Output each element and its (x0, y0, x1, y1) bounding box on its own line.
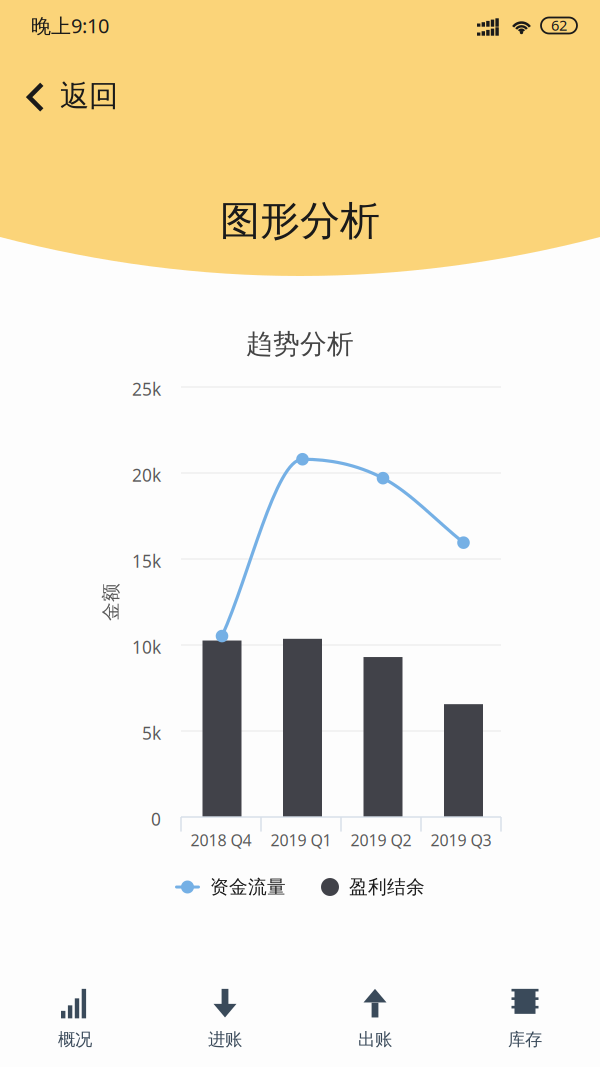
staticText: 趋势分析 (246, 328, 354, 360)
staticText: 15k (132, 549, 161, 572)
staticText: 0 (151, 807, 161, 830)
staticText: 2019 Q2 (350, 829, 411, 851)
staticText: 图形分析 (220, 196, 380, 245)
staticText: 库存 (508, 1029, 542, 1050)
staticText: 2019 Q1 (270, 829, 331, 851)
staticText: 5k (142, 721, 161, 744)
staticText: 盈利结余 (349, 875, 425, 898)
staticText: 进账 (208, 1029, 242, 1050)
staticText: 资金流量 (210, 875, 286, 898)
staticText: 返回 (60, 78, 118, 114)
button[interactable]: 出账 (300, 977, 450, 1062)
button[interactable]: 库存 (450, 977, 600, 1062)
button[interactable]: 进账 (150, 977, 300, 1062)
staticText: 2019 Q3 (430, 829, 491, 851)
staticText: 晚上9:10 (31, 12, 109, 39)
button[interactable]: 概况 (0, 977, 150, 1062)
staticText: 62 (551, 15, 567, 35)
staticText: 20k (132, 463, 161, 486)
staticText: 金额 (92, 590, 130, 613)
staticText: 概况 (58, 1029, 92, 1050)
staticText: 25k (132, 377, 161, 400)
staticText: 10k (132, 635, 161, 658)
staticText: 2018 Q4 (190, 829, 251, 851)
button[interactable]: 返回 (0, 51, 140, 128)
staticText: 出账 (358, 1029, 392, 1050)
